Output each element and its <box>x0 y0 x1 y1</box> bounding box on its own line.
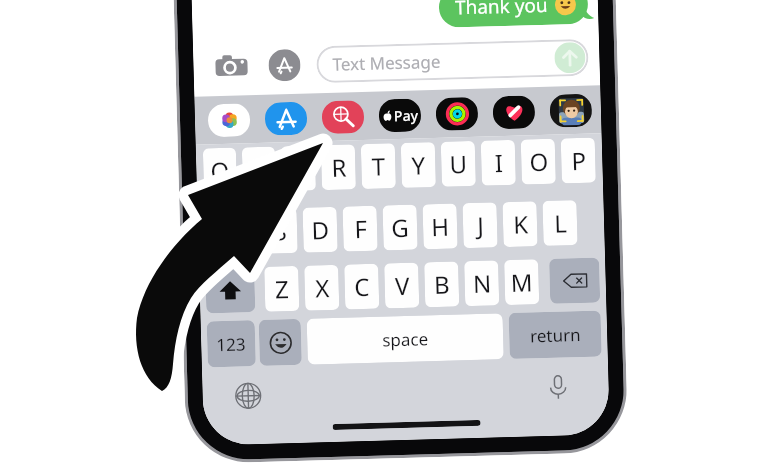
staticText: N <box>472 266 492 300</box>
button[interactable]: Photos <box>208 103 250 137</box>
staticText: space <box>382 327 428 352</box>
button[interactable]: L <box>542 200 578 246</box>
button[interactable]: W <box>242 146 276 192</box>
button[interactable]: C <box>344 264 379 309</box>
button[interactable]: Emoji <box>259 319 302 366</box>
button[interactable]: U <box>441 141 476 187</box>
staticText: B <box>433 268 450 301</box>
button[interactable]: V <box>384 262 419 308</box>
staticText: Y <box>411 148 426 182</box>
button[interactable]: P <box>561 137 596 183</box>
button[interactable]: Q <box>203 148 237 193</box>
staticText: L <box>554 206 567 240</box>
button[interactable]: F <box>342 206 378 252</box>
button[interactable]: D <box>302 207 338 253</box>
button[interactable]: K <box>502 201 538 247</box>
staticText: Z <box>274 272 289 306</box>
button[interactable]: Camera <box>214 49 249 84</box>
button[interactable]: H <box>422 203 458 249</box>
button[interactable]: Z <box>264 266 299 312</box>
staticText: Q <box>210 154 230 187</box>
button[interactable]: Memoji <box>549 94 592 128</box>
button[interactable]: Thank you <box>438 0 588 28</box>
button[interactable]: M <box>504 259 539 305</box>
staticText: S <box>273 214 288 248</box>
staticText: return <box>530 323 581 347</box>
button[interactable]: Apple Pay <box>378 98 421 133</box>
button[interactable]: Text Message <box>316 39 589 83</box>
button[interactable]: App Store <box>268 49 301 82</box>
staticText: M <box>510 265 533 299</box>
button[interactable]: return <box>508 310 602 359</box>
staticText: P <box>571 144 587 177</box>
button[interactable]: App Store <box>265 102 307 136</box>
button[interactable]: Delete <box>549 257 600 304</box>
staticText: T <box>371 149 386 183</box>
button[interactable]: R <box>321 144 356 190</box>
staticText: Pay <box>394 105 418 125</box>
staticText: V <box>394 269 410 302</box>
button[interactable]: Y <box>401 142 436 188</box>
staticText: K <box>513 207 528 241</box>
button[interactable]: 123 <box>207 320 256 367</box>
staticText: Text Message <box>332 50 441 76</box>
button[interactable]: E <box>281 145 316 191</box>
button[interactable]: Change keyboard <box>230 378 265 413</box>
staticText: U <box>449 147 468 181</box>
staticText: O <box>529 145 549 178</box>
button[interactable]: Image search <box>321 100 364 134</box>
button[interactable]: X <box>304 265 339 311</box>
staticText: C <box>353 270 370 303</box>
button[interactable]: I <box>481 140 516 186</box>
button[interactable]: T <box>361 143 396 189</box>
button[interactable]: B <box>424 261 459 307</box>
staticText: D <box>311 213 330 246</box>
staticText: I <box>494 146 504 179</box>
button[interactable]: N <box>464 260 499 306</box>
button[interactable]: Send <box>554 42 586 74</box>
button[interactable]: Health <box>492 95 535 129</box>
staticText: E <box>291 152 306 185</box>
staticText: 123 <box>216 332 247 356</box>
button[interactable]: J <box>462 202 498 248</box>
staticText: W <box>247 153 271 186</box>
staticText: R <box>331 150 347 184</box>
staticText: H <box>431 210 449 243</box>
button[interactable]: Fitness <box>435 97 478 131</box>
button[interactable]: S <box>262 208 298 254</box>
staticText: F <box>354 212 367 245</box>
staticText: X <box>314 271 330 304</box>
button[interactable]: Shift <box>205 267 255 313</box>
staticText: G <box>391 211 409 244</box>
button[interactable]: G <box>382 204 418 250</box>
staticText: Thank you <box>455 0 548 20</box>
button[interactable]: Dictate <box>540 369 575 404</box>
button[interactable]: space <box>307 313 504 365</box>
staticText: J <box>477 209 484 242</box>
button[interactable]: O <box>521 139 556 185</box>
other: Swipe up gesture arrow <box>0 0 780 470</box>
